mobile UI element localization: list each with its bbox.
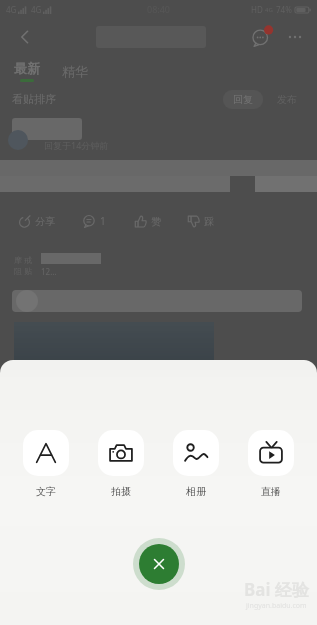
staticText: 74% (276, 4, 292, 15)
staticText: 4G (6, 4, 17, 15)
staticText: 摩 戒 (14, 254, 33, 265)
button[interactable]: Back (10, 22, 40, 52)
staticText: 看贴排序 (12, 92, 56, 106)
staticText: 直播 (261, 485, 281, 498)
staticText: 发布 (277, 93, 297, 106)
button[interactable]: 踩 (185, 213, 216, 230)
button[interactable]: 分享 (16, 213, 57, 230)
button[interactable]: Messages (247, 22, 277, 52)
button[interactable]: Close (139, 544, 179, 584)
staticText: 相册 (186, 485, 206, 498)
button[interactable]: Live (242, 428, 300, 500)
button[interactable]: Camera (92, 428, 150, 500)
staticText: 12… (41, 266, 57, 277)
button[interactable]: 最新 (12, 60, 42, 82)
staticText: 4G (31, 4, 42, 15)
button[interactable]: Album (167, 428, 225, 500)
staticText: 1 (100, 214, 106, 228)
staticText: HD (251, 4, 263, 15)
staticText: 最新 (14, 60, 40, 76)
staticText: 拍摄 (111, 485, 131, 498)
staticText: 4G (265, 6, 273, 14)
button[interactable]: 精华 (60, 59, 90, 83)
staticText: 赞 (151, 215, 161, 228)
staticText: 文字 (36, 485, 56, 498)
staticText: 阻 贴 (14, 265, 33, 276)
button[interactable]: 赞 (132, 213, 163, 230)
staticText: jingyan.baidu.com (246, 601, 307, 611)
staticText: 回复于14分钟前 (44, 139, 109, 151)
staticText: Bai 经验 (244, 578, 309, 601)
button[interactable]: Text post (17, 428, 75, 500)
staticText: 精华 (62, 63, 88, 79)
button[interactable]: 回复 (223, 90, 263, 109)
button[interactable]: More options (281, 23, 309, 51)
staticText: 踩 (204, 215, 214, 228)
staticText: 回复 (233, 93, 253, 106)
button[interactable]: 发布 (269, 90, 305, 109)
button[interactable]: 1 (81, 212, 108, 230)
button[interactable] (0, 0, 317, 625)
staticText: 分享 (35, 215, 55, 228)
